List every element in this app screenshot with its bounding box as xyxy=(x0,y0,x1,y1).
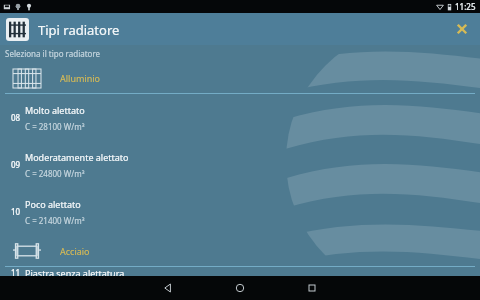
staticText: Molto alettato xyxy=(25,104,85,116)
staticText: 10 xyxy=(11,206,21,217)
staticText: 11 xyxy=(11,267,21,276)
button[interactable]: 11 xyxy=(0,267,480,276)
button[interactable]: 09 xyxy=(0,141,480,188)
button[interactable]: 08 xyxy=(0,94,480,141)
staticText: C = 21400 W/m³ xyxy=(25,215,85,226)
button[interactable]: Recents xyxy=(276,276,348,300)
staticText: Seleziona il tipo radiatore xyxy=(5,48,101,59)
button[interactable]: Alluminio xyxy=(0,62,480,93)
button[interactable]: Acciaio xyxy=(0,235,480,266)
button[interactable]: Back xyxy=(132,276,204,300)
staticText: Moderatamente alettato xyxy=(25,151,129,163)
staticText: 11:25 xyxy=(455,1,476,12)
staticText: 08 xyxy=(11,112,21,123)
staticText: Tipi radiatore xyxy=(38,21,120,39)
staticText: 09 xyxy=(11,159,21,170)
staticText: Alluminio xyxy=(60,72,101,84)
staticText: C = 24800 W/m³ xyxy=(25,168,85,179)
staticText: Piastra senza alettatura xyxy=(25,267,125,276)
button[interactable]: 10 xyxy=(0,188,480,235)
button[interactable]: Home xyxy=(204,276,276,300)
staticText: C = 28100 W/m³ xyxy=(25,121,85,132)
staticText: Poco alettato xyxy=(25,198,81,210)
button[interactable]: Chiudi xyxy=(449,16,475,42)
staticText: Acciaio xyxy=(60,245,90,257)
